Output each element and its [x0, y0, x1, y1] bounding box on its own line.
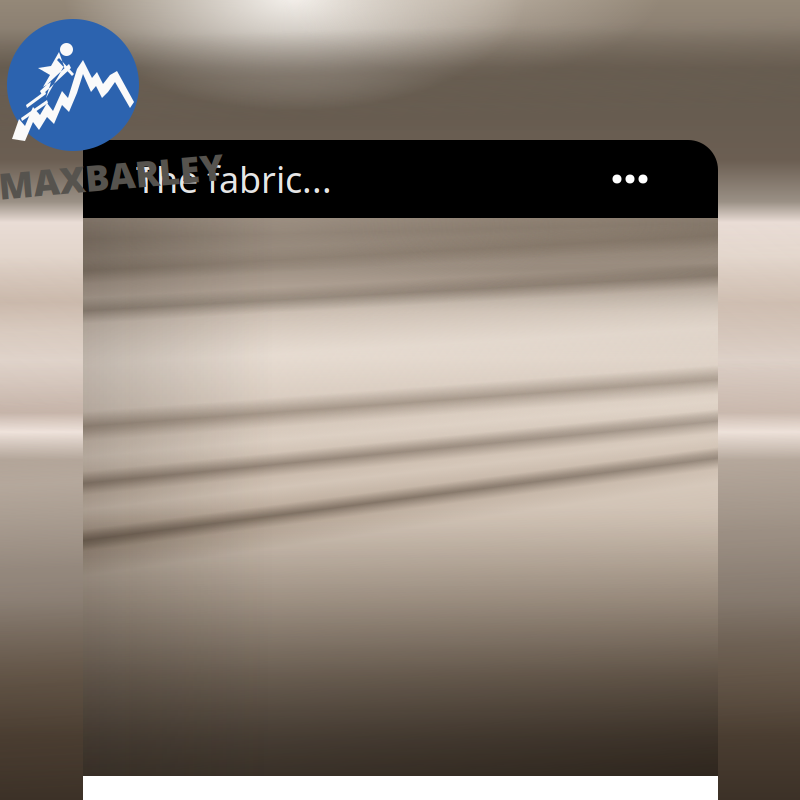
staticText: The fabric... [136, 155, 332, 203]
button[interactable]: The fabric... [83, 140, 578, 218]
staticText: MAXBARLEY [0, 152, 224, 200]
button[interactable]: More options [586, 140, 674, 218]
